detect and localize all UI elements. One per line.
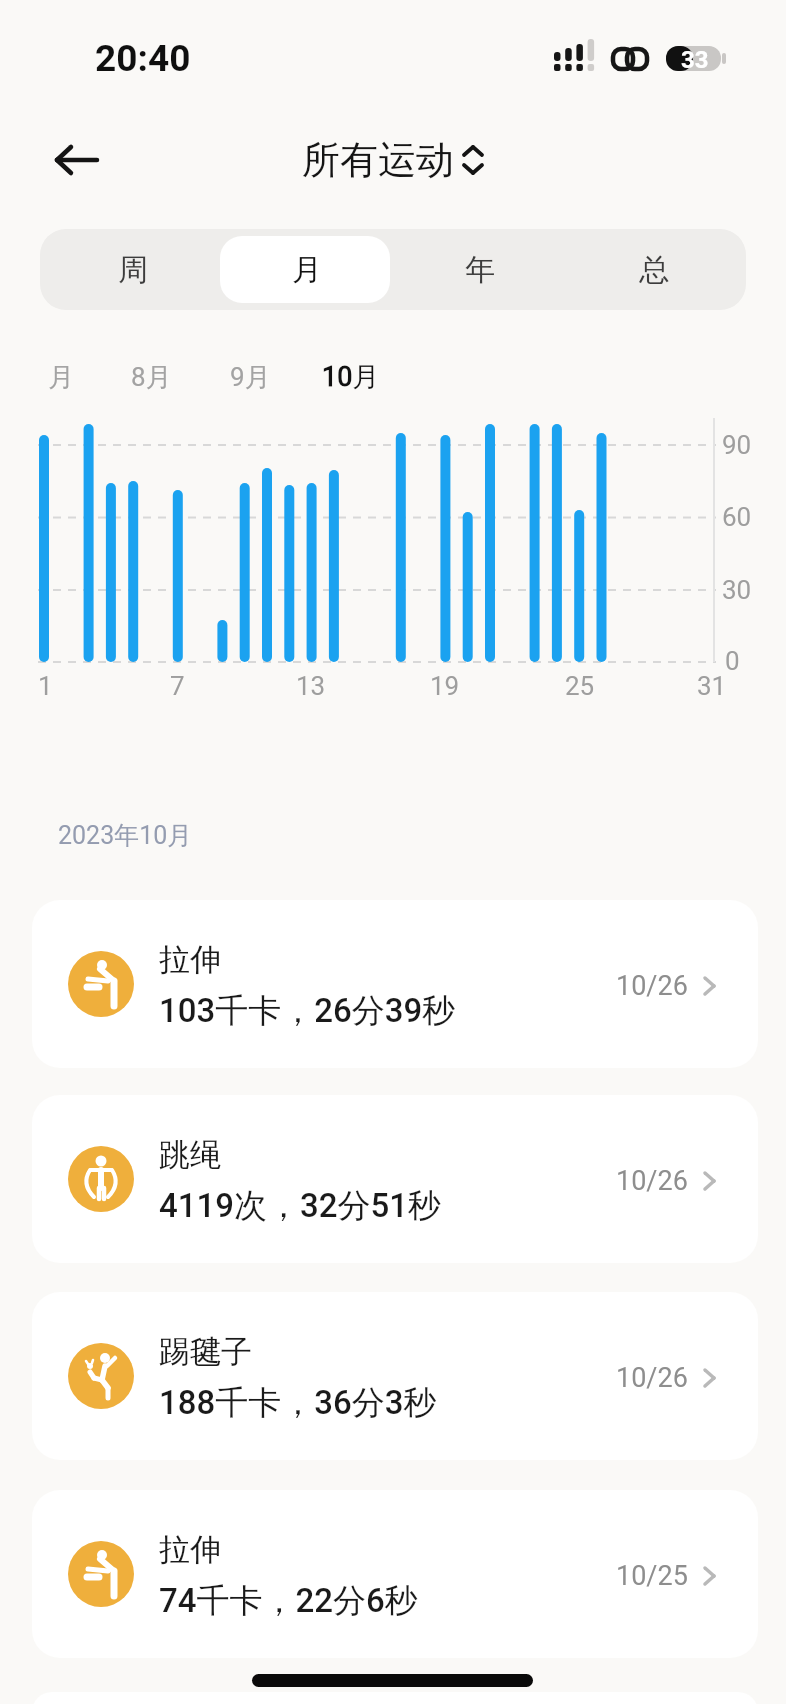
staticText: 4119次，32分51秒 — [159, 1185, 442, 1227]
staticText: 月 — [292, 251, 322, 289]
staticText: 31 — [697, 671, 727, 701]
staticText: 2023年10月 — [58, 820, 193, 851]
staticText: 周 — [118, 251, 148, 289]
staticText: 年 — [465, 251, 495, 289]
staticText: 拉伸 — [159, 1530, 221, 1569]
button[interactable]: 拉伸 — [32, 1490, 758, 1658]
button[interactable]: 年 — [393, 229, 566, 310]
staticText: 25 — [565, 671, 595, 701]
staticText: 所有运动 — [302, 136, 454, 184]
staticText: 总 — [639, 251, 669, 289]
staticText: 7 — [170, 671, 185, 701]
staticText: 10/26 — [616, 1362, 688, 1394]
staticText: 90 — [722, 430, 752, 460]
staticText: 13 — [296, 671, 326, 701]
staticText: 188千卡，36分3秒 — [159, 1382, 437, 1424]
staticText: 10/25 — [616, 1560, 688, 1592]
staticText: 踢毽子 — [159, 1332, 252, 1371]
staticText: 60 — [722, 502, 752, 532]
staticText: 30 — [722, 575, 752, 605]
staticText: 10/26 — [616, 1165, 688, 1197]
button[interactable] — [54, 142, 100, 178]
staticText: 月 — [48, 361, 74, 394]
staticText: 10月 — [322, 360, 380, 394]
staticText: 0 — [725, 646, 740, 676]
staticText: 33 — [681, 46, 709, 72]
button[interactable]: 拉伸 — [32, 900, 758, 1068]
button[interactable]: 总 — [567, 229, 740, 310]
staticText: 103千卡，26分39秒 — [159, 990, 456, 1032]
staticText: 20:40 — [95, 37, 191, 80]
staticText: 74千卡，22分6秒 — [159, 1580, 418, 1622]
button[interactable]: 踢毽子 — [32, 1292, 758, 1460]
staticText: 跳绳 — [159, 1135, 221, 1174]
button[interactable]: 跳绳 — [32, 1095, 758, 1263]
staticText: 10/26 — [616, 970, 688, 1002]
button[interactable]: 月 — [220, 229, 393, 310]
button[interactable]: 周 — [46, 229, 219, 310]
staticText: 19 — [430, 671, 460, 701]
staticText: 9月 — [230, 361, 271, 394]
staticText: 1 — [38, 671, 53, 701]
button[interactable]: 所有运动 — [302, 136, 484, 184]
staticText: 拉伸 — [159, 940, 221, 979]
staticText: 8月 — [131, 361, 172, 394]
